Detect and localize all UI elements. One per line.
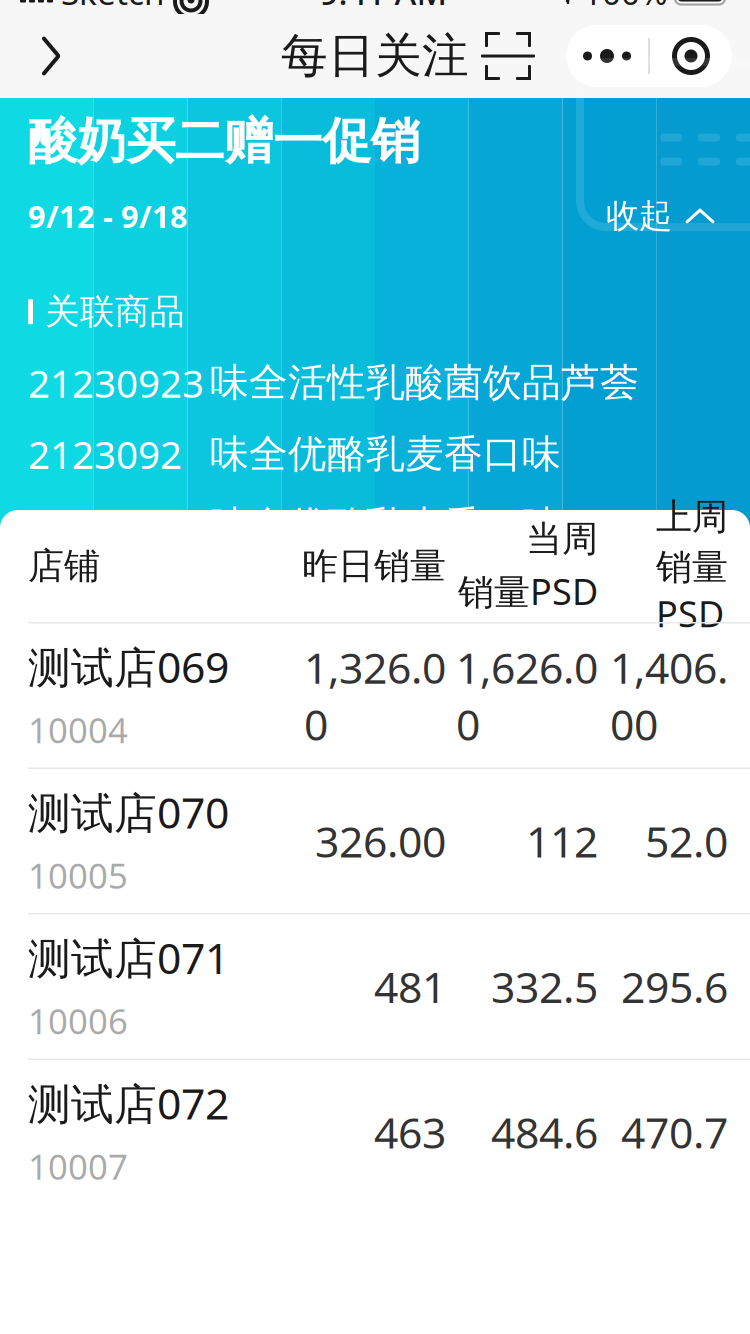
button[interactable]: 测试店072 — [0, 1060, 750, 1204]
staticText: 1,626.00 — [456, 639, 598, 752]
staticText: 1,326.00 — [304, 639, 446, 752]
staticText: 463 — [374, 1104, 446, 1160]
button[interactable]: 收起 — [600, 187, 722, 244]
staticText: 100% — [583, 0, 668, 14]
button[interactable]: 测试店070 — [0, 769, 750, 913]
staticText: 481 — [374, 958, 446, 1015]
staticText: 9/12 - 9/18 — [28, 196, 188, 236]
staticText: 10007 — [28, 1143, 128, 1189]
staticText: 112 — [526, 813, 598, 869]
staticText: 21230923 — [28, 357, 204, 408]
staticText: 店铺 — [28, 544, 100, 588]
staticText: 收起 — [606, 195, 672, 236]
staticText: 味全优酪乳麦香口味 — [210, 430, 561, 478]
staticText: Sketch — [61, 0, 165, 14]
staticText: 2123092 — [28, 428, 182, 480]
staticText: 326.00 — [315, 813, 446, 869]
staticText: 10004 — [28, 707, 128, 753]
staticText: 销量PSD — [656, 545, 728, 637]
button[interactable]: 关闭 — [650, 25, 732, 87]
staticText: 上周 — [656, 495, 728, 539]
staticText: 每日关注 — [281, 27, 469, 85]
button[interactable]: 扫一扫 — [468, 14, 548, 98]
staticText: 当周 — [526, 517, 598, 561]
staticText: 测试店069 — [28, 638, 229, 695]
staticText: 味全活性乳酸菌饮品芦荟 — [210, 359, 639, 406]
button[interactable]: 返回 — [10, 14, 92, 98]
staticText: 9:41 AM — [319, 0, 447, 14]
staticText: 21230923 — [28, 500, 204, 551]
staticText: 10005 — [28, 852, 128, 898]
staticText: 1,406.00 — [610, 639, 728, 752]
button[interactable]: 测试店069 — [0, 623, 750, 767]
staticText: 测试店070 — [28, 784, 229, 840]
staticText: 52.0 — [645, 813, 728, 869]
staticText: 关联商品 — [45, 290, 185, 333]
staticText: 味全优酪乳麦香口味 — [210, 502, 561, 549]
staticText: 测试店072 — [28, 1075, 229, 1131]
staticText: 295.6 — [621, 958, 728, 1015]
staticText: 470.7 — [621, 1104, 728, 1160]
staticText: 测试店071 — [28, 929, 229, 986]
staticText: 484.6 — [491, 1104, 598, 1160]
staticText: 酸奶买二赠一促销 — [28, 111, 420, 171]
button[interactable]: 测试店071 — [0, 914, 750, 1058]
staticText: 332.5 — [491, 958, 598, 1015]
staticText: 10006 — [28, 998, 128, 1044]
staticText: 昨日销量 — [302, 544, 446, 588]
button[interactable]: 更多 — [566, 25, 648, 87]
staticText: 销量PSD — [458, 567, 598, 615]
